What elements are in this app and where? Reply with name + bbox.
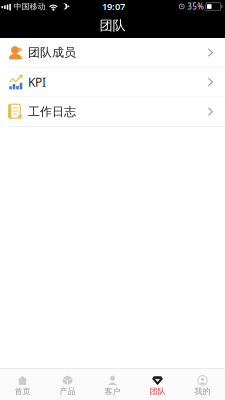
staticText: 客户 [104,386,120,396]
button[interactable]: 工作日志 [0,97,225,127]
staticText: KPI [28,74,46,90]
button[interactable]: 产品 [45,369,90,400]
staticText: 我的 [194,386,210,396]
button[interactable]: 首页 [0,369,45,400]
button[interactable]: 团队 [135,369,180,400]
staticText: 工作日志 [28,104,76,119]
staticText: 中国移动 [13,2,45,11]
staticText: 35% [187,1,204,12]
staticText: 团队 [99,17,125,34]
button[interactable]: 我的 [180,369,225,400]
staticText: 首页 [14,386,30,396]
button[interactable]: KPI [0,68,225,97]
staticText: 团队成员 [28,45,76,60]
staticText: 团队 [149,386,165,396]
button[interactable]: 团队成员 [0,38,225,68]
staticText: 产品 [59,386,75,396]
button[interactable]: 客户 [90,369,135,400]
staticText: 19:07 [102,0,125,13]
